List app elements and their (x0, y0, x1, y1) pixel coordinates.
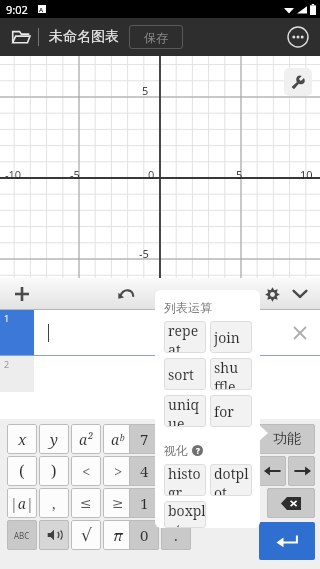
button[interactable]: Help (192, 445, 203, 456)
button[interactable]: Audio trace (39, 520, 69, 550)
button[interactable]: Move right (288, 456, 315, 486)
staticText: shuffle (214, 358, 252, 390)
button[interactable]: Open folder (8, 24, 34, 50)
staticText: boxplot (168, 501, 206, 528)
staticText: y (50, 429, 58, 449)
staticText: join (214, 328, 240, 347)
button[interactable]: y (39, 424, 69, 454)
button[interactable]: shuffle (210, 358, 252, 390)
staticText: sort (168, 365, 194, 384)
staticText: 列表运算 (164, 300, 212, 315)
button[interactable]: histogr (164, 464, 206, 496)
button[interactable]: 3 (193, 488, 223, 518)
button[interactable]: Delete expression (288, 321, 312, 345)
staticText: ≥ (112, 495, 124, 511)
button[interactable]: , (39, 488, 69, 518)
button[interactable]: for (210, 395, 252, 427)
staticText: 3 (204, 493, 213, 513)
staticText: |a| (10, 494, 34, 513)
staticText: 0 (148, 167, 155, 182)
button[interactable]: 1 (129, 488, 159, 518)
staticText: 5 (172, 461, 181, 481)
button[interactable]: aᵇ (103, 424, 133, 454)
staticText: 9:02 (6, 2, 28, 17)
button[interactable]: ≥ (103, 488, 133, 518)
staticText: . (174, 525, 178, 545)
button[interactable]: 2 (0, 356, 320, 392)
button[interactable]: ≤ (71, 488, 101, 518)
staticText: dotplot (214, 464, 252, 496)
staticText: ) (51, 460, 57, 482)
button[interactable]: repeat (164, 321, 206, 353)
staticText: 6 (204, 461, 213, 481)
staticText: ? (196, 445, 200, 456)
button[interactable]: boxplot (164, 501, 206, 528)
button[interactable]: Add expression (8, 280, 36, 308)
button[interactable]: ( (7, 456, 37, 486)
button[interactable]: Collapse (286, 280, 314, 308)
staticText: 2 (4, 358, 10, 370)
button[interactable]: π (103, 520, 133, 550)
staticText: ≤ (80, 495, 92, 511)
button[interactable]: x (7, 424, 37, 454)
staticText: a² (79, 430, 93, 449)
button[interactable]: 6 (193, 456, 223, 486)
staticText: 5 (142, 83, 149, 98)
staticText: 功能 (273, 430, 301, 448)
button[interactable]: 0 (129, 520, 159, 550)
staticText: 未命名图表 (49, 28, 119, 46)
staticText: 7 (140, 429, 149, 449)
staticText: -5 (70, 167, 80, 182)
staticText: 保存 (144, 30, 168, 45)
staticText: π (113, 525, 123, 545)
staticText: histogr (168, 464, 206, 496)
button[interactable]: dotplot (210, 464, 252, 496)
button[interactable]: join (210, 321, 252, 353)
button[interactable]: |a| (7, 488, 37, 518)
staticText: 4 (140, 461, 149, 481)
staticText: 1 (4, 312, 10, 324)
button[interactable]: a² (71, 424, 101, 454)
button[interactable]: 7 (129, 424, 159, 454)
button[interactable]: . (161, 520, 191, 550)
button[interactable]: 8 (161, 424, 191, 454)
button[interactable]: Move left (259, 456, 286, 486)
button[interactable]: Settings (258, 280, 286, 308)
button[interactable]: 2 (161, 488, 191, 518)
button[interactable]: ) (39, 456, 69, 486)
staticText: < (82, 461, 91, 481)
staticText: for (214, 402, 234, 421)
staticText: 0 (140, 525, 149, 545)
staticText: 2 (172, 493, 181, 513)
staticText: ABC (14, 530, 30, 541)
button[interactable]: < (71, 456, 101, 486)
staticText: unique (168, 395, 206, 427)
button[interactable]: Backspace (267, 488, 315, 518)
button[interactable]: 9 (193, 424, 223, 454)
staticText: 8 (172, 429, 181, 449)
button[interactable]: 功能 (259, 424, 315, 454)
button[interactable]: 4 (129, 456, 159, 486)
button[interactable]: unique (164, 395, 206, 427)
button[interactable]: √ (71, 520, 101, 550)
staticText: 1 (140, 493, 149, 513)
button[interactable]: 5 (161, 456, 191, 486)
button[interactable]: Graph settings (284, 68, 312, 96)
button[interactable]: ABC (7, 520, 37, 550)
staticText: A (39, 6, 44, 12)
button[interactable]: sort (164, 358, 206, 390)
staticText: , (52, 494, 56, 513)
staticText: ( (19, 460, 25, 482)
button[interactable]: 保存 (129, 25, 183, 49)
staticText: √ (81, 525, 92, 545)
button[interactable]: 1 (0, 310, 320, 355)
staticText: 视化 (164, 443, 188, 458)
button[interactable]: Enter (259, 522, 315, 560)
staticText: repeat (168, 321, 206, 353)
staticText: > (114, 461, 123, 481)
button[interactable]: > (103, 456, 133, 486)
staticText: 5 (236, 167, 243, 182)
button[interactable]: Undo (112, 280, 140, 308)
button[interactable]: More options (286, 25, 310, 49)
